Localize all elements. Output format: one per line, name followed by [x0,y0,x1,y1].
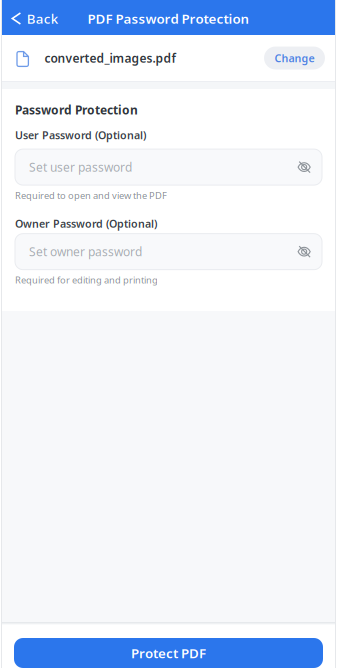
staticText: User Password (Optional) [15,128,146,142]
staticText: Password Protection [15,102,138,118]
staticText: Set user password [29,159,132,175]
staticText: Required to open and view the PDF [15,189,167,201]
staticText: Change [274,51,314,65]
staticText: Back [27,10,58,27]
staticText: Owner Password (Optional) [15,216,157,231]
button[interactable]: Show password [289,238,322,266]
staticText: Protect PDF [131,644,206,662]
staticText: converted_images.pdf [44,50,175,66]
staticText: PDF Password Protection [87,10,249,27]
button[interactable]: Show password [289,153,322,181]
button[interactable]: Protect PDF [2,638,335,668]
button[interactable]: Change [264,46,325,69]
staticText: Set owner password [29,244,142,260]
button[interactable]: Back [2,0,68,35]
staticText: Required for editing and printing [15,274,158,286]
